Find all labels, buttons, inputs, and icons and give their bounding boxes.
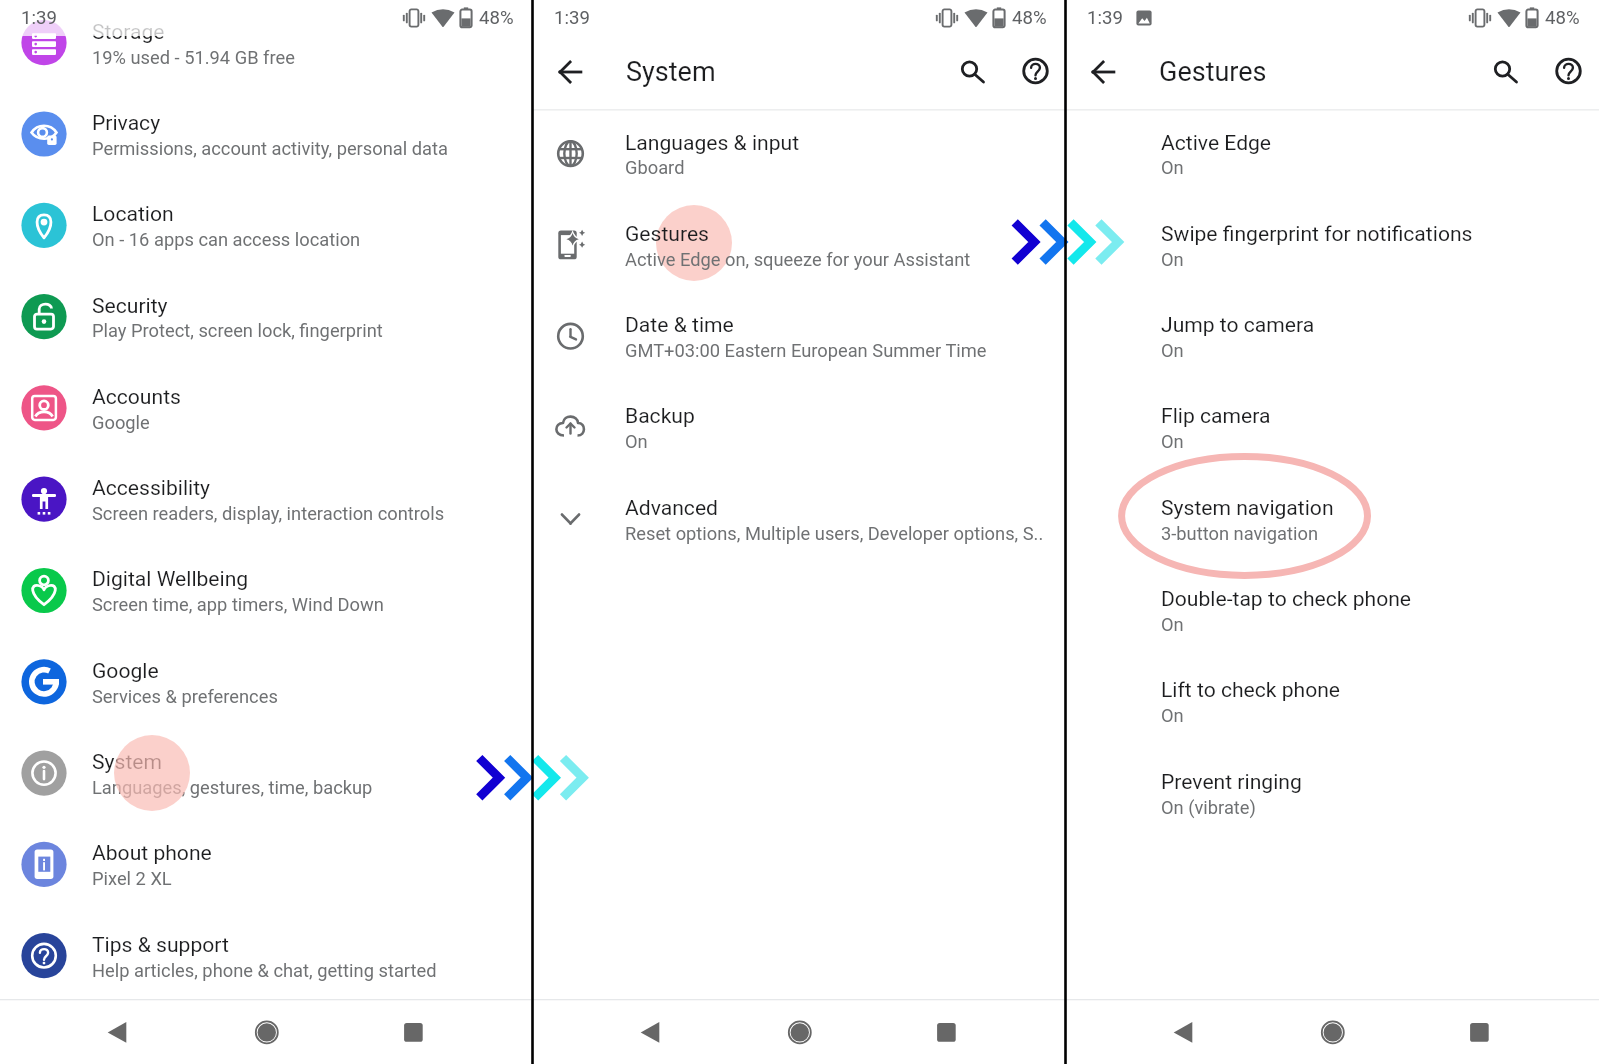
staticText: Gboard (625, 157, 685, 178)
staticText: On (1161, 614, 1184, 635)
staticText: Accounts (92, 384, 181, 409)
button[interactable] (1066, 565, 1599, 655)
button[interactable] (0, 363, 531, 453)
staticText: System (626, 56, 716, 88)
staticText: Jump to camera (1161, 312, 1315, 337)
button[interactable]: Back (110, 1007, 162, 1057)
staticText: About phone (92, 840, 212, 865)
button[interactable]: Home (241, 1007, 293, 1057)
staticText: Screen readers, display, interaction con… (92, 503, 445, 524)
button[interactable] (0, 911, 531, 1001)
staticText: Languages & input (625, 130, 800, 155)
button[interactable] (0, 272, 531, 362)
button[interactable]: Navigate up (1079, 48, 1129, 98)
staticText: Languages, gestures, time, backup (92, 777, 373, 798)
staticText: On (625, 431, 648, 452)
staticText: Tips & support (92, 932, 229, 957)
staticText: On (1161, 157, 1184, 178)
button[interactable] (0, 546, 531, 636)
button[interactable]: Help (1544, 46, 1594, 96)
button[interactable] (1066, 109, 1599, 199)
staticText: Help articles, phone & chat, getting sta… (92, 960, 437, 981)
button[interactable] (1066, 656, 1599, 746)
staticText: On (1161, 249, 1184, 270)
staticText: Date & time (625, 312, 734, 337)
button[interactable] (0, 89, 531, 179)
staticText: Backup (625, 403, 695, 428)
staticText: GMT+03:00 Eastern European Summer Time (625, 340, 987, 361)
button[interactable] (0, 454, 531, 544)
staticText: Active Edge (1161, 130, 1272, 155)
button[interactable] (0, 0, 531, 88)
staticText: 48% (1012, 7, 1047, 29)
staticText: Gestures (625, 221, 709, 246)
button[interactable] (1066, 748, 1599, 838)
button[interactable]: Help (1011, 46, 1061, 96)
staticText: System navigation (1161, 495, 1334, 520)
staticText: 48% (479, 7, 514, 29)
staticText: On (1161, 340, 1184, 361)
staticText: 3-button navigation (1161, 523, 1319, 544)
button[interactable]: Recent apps (921, 1007, 973, 1057)
staticText: Reset options, Multiple users, Developer… (625, 523, 1044, 544)
staticText: Services & preferences (92, 686, 278, 707)
staticText: Flip camera (1161, 403, 1271, 428)
staticText: 1:39 (21, 7, 57, 29)
staticText: Security (92, 293, 168, 318)
staticText: On (1161, 431, 1184, 452)
staticText: On - 16 apps can access location (92, 229, 361, 250)
staticText: Lift to check phone (1161, 677, 1341, 702)
staticText: Permissions, account activity, personal … (92, 138, 448, 159)
staticText: Play Protect, screen lock, fingerprint (92, 320, 383, 341)
button[interactable]: Search (945, 46, 995, 96)
staticText: Location (92, 201, 174, 226)
staticText: Privacy (92, 110, 161, 135)
button[interactable]: Navigate up (546, 48, 596, 98)
staticText: On (1161, 705, 1184, 726)
button[interactable] (1066, 474, 1599, 564)
button[interactable] (533, 200, 1066, 290)
button[interactable] (533, 383, 1066, 473)
button[interactable] (533, 291, 1066, 381)
button[interactable]: Home (1307, 1007, 1359, 1057)
staticText: 48% (1545, 7, 1580, 29)
button[interactable] (1066, 291, 1599, 381)
staticText: Screen time, app timers, Wind Down (92, 594, 384, 615)
staticText: Accessibility (92, 475, 211, 500)
staticText: Gestures (1159, 56, 1267, 88)
button[interactable] (533, 109, 1066, 199)
button[interactable] (0, 728, 531, 818)
button[interactable]: Back (1176, 1007, 1228, 1057)
button[interactable]: Recent apps (388, 1007, 440, 1057)
staticText: Prevent ringing (1161, 769, 1302, 794)
button[interactable] (1066, 383, 1599, 473)
button[interactable] (533, 474, 1066, 564)
button[interactable]: Recent apps (1454, 1007, 1506, 1057)
staticText: On (vibrate) (1161, 797, 1256, 818)
staticText: Digital Wellbeing (92, 566, 249, 591)
button[interactable]: Search (1478, 46, 1528, 96)
staticText: 1:39 (1087, 7, 1123, 29)
staticText: Advanced (625, 495, 718, 520)
staticText: Swipe fingerprint for notifications (1161, 221, 1473, 246)
staticText: System (92, 749, 162, 774)
staticText: Pixel 2 XL (92, 868, 172, 889)
staticText: Google (92, 412, 150, 433)
staticText: Google (92, 658, 159, 683)
staticText: 1:39 (554, 7, 590, 29)
button[interactable] (0, 819, 531, 909)
button[interactable]: Home (774, 1007, 826, 1057)
staticText: Active Edge on, squeeze for your Assista… (625, 249, 971, 270)
button[interactable] (0, 180, 531, 270)
button[interactable]: Back (643, 1007, 695, 1057)
staticText: 19% used - 51.94 GB free (92, 47, 295, 68)
button[interactable] (0, 637, 531, 727)
staticText: Storage (92, 19, 165, 44)
button[interactable] (1066, 200, 1599, 290)
staticText: Double-tap to check phone (1161, 586, 1412, 611)
